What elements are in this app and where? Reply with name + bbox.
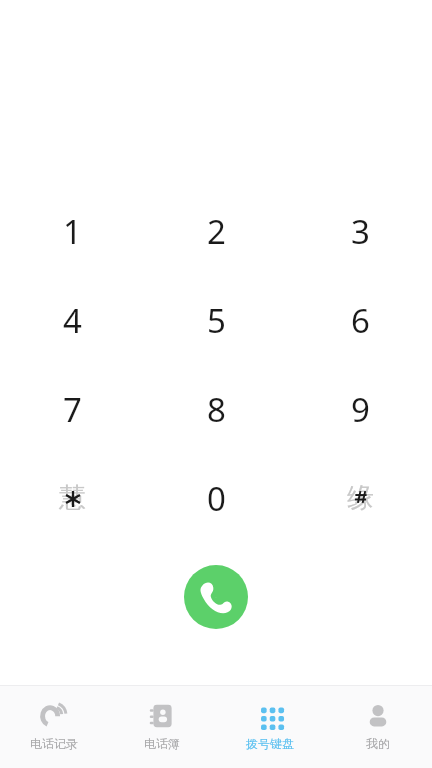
staticText: 1 — [63, 209, 82, 254]
staticText: 9 — [351, 387, 370, 432]
staticText: 8 — [207, 387, 226, 432]
staticText: 0 — [207, 476, 226, 521]
button[interactable]: 2 — [173, 196, 259, 266]
staticText: 缘 — [347, 481, 374, 515]
button[interactable]: 缘 — [317, 463, 403, 533]
button[interactable]: 3 — [317, 196, 403, 266]
button[interactable]: 慧 — [29, 463, 115, 533]
staticText: 6 — [351, 298, 370, 343]
staticText: 慧 — [59, 481, 86, 515]
staticText: 电话簿 — [144, 736, 180, 751]
button[interactable]: 5 — [173, 285, 259, 355]
button[interactable]: Call — [184, 565, 248, 629]
staticText: 4 — [63, 298, 82, 343]
button[interactable]: 6 — [317, 285, 403, 355]
button[interactable]: 9 — [317, 374, 403, 444]
staticText: 5 — [207, 298, 226, 343]
button[interactable]: 7 — [29, 374, 115, 444]
button[interactable]: 拨号键盘 — [216, 686, 324, 768]
staticText: 拨号键盘 — [246, 736, 294, 751]
staticText: 2 — [207, 209, 226, 254]
staticText: 我的 — [366, 736, 390, 751]
button[interactable]: 8 — [173, 374, 259, 444]
button[interactable]: 0 — [173, 463, 259, 533]
button[interactable]: 1 — [29, 196, 115, 266]
button[interactable]: 我的 — [324, 686, 432, 768]
staticText: 电话记录 — [30, 736, 78, 751]
staticText: 3 — [351, 209, 370, 254]
button[interactable]: 4 — [29, 285, 115, 355]
button[interactable]: 电话簿 — [108, 686, 216, 768]
button[interactable]: 电话记录 — [0, 686, 108, 768]
staticText: 7 — [63, 387, 82, 432]
